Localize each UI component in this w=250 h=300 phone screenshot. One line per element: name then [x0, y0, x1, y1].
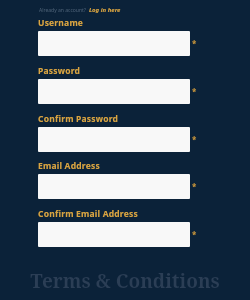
- staticText: Confirm Password: [38, 113, 119, 125]
- staticText: *: [192, 134, 197, 145]
- staticText: Terms & Conditions: [0, 268, 250, 294]
- staticText: *: [192, 181, 197, 192]
- staticText: *: [192, 229, 197, 240]
- staticText: Email Address: [38, 160, 100, 172]
- button[interactable]: Already an account?: [38, 5, 122, 15]
- staticText: Confirm Email Address: [38, 208, 138, 220]
- staticText: Already an account?: [39, 7, 86, 14]
- staticText: *: [192, 38, 197, 49]
- staticText: *: [192, 86, 197, 97]
- staticText: Username: [38, 17, 84, 29]
- staticText: Log in here: [89, 6, 121, 14]
- staticText: Password: [38, 65, 81, 77]
